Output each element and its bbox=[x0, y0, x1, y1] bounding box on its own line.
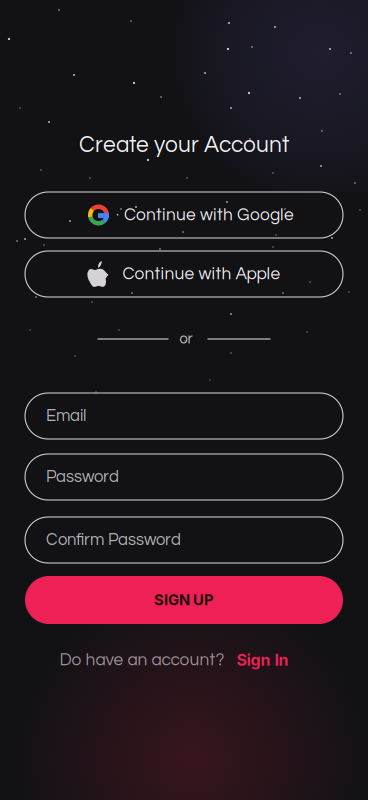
button[interactable]: Email bbox=[25, 393, 343, 439]
staticText: · bbox=[116, 207, 119, 222]
staticText: Do have an account? bbox=[59, 651, 224, 669]
button[interactable]: Continue with Apple bbox=[25, 251, 343, 297]
staticText: SIGN UP bbox=[154, 591, 214, 609]
staticText: Continue with Apple bbox=[122, 265, 280, 283]
staticText: or bbox=[179, 331, 192, 346]
staticText: Create your Account bbox=[79, 133, 289, 157]
button[interactable]: SIGN UP bbox=[25, 576, 343, 624]
staticText: Password bbox=[46, 468, 119, 486]
staticText: Confirm Password bbox=[46, 531, 181, 549]
staticText: Sign In bbox=[236, 650, 288, 670]
staticText: Email bbox=[46, 407, 86, 425]
button[interactable]: Password bbox=[25, 454, 343, 500]
button[interactable]: Confirm Password bbox=[25, 517, 343, 563]
button[interactable]: Sign In bbox=[236, 650, 288, 670]
button[interactable]: · bbox=[25, 192, 343, 238]
staticText: Continue with Google bbox=[124, 206, 294, 224]
